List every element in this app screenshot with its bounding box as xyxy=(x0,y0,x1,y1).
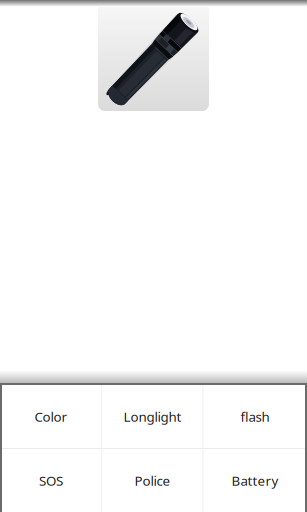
staticText: Longlight xyxy=(123,408,181,425)
button[interactable]: Police xyxy=(102,449,202,512)
button[interactable]: SOS xyxy=(0,449,101,512)
button[interactable]: Longlight xyxy=(102,385,202,448)
button[interactable]: flash xyxy=(203,385,306,448)
staticText: flash xyxy=(240,408,269,425)
staticText: Color xyxy=(34,408,67,425)
button[interactable]: Battery xyxy=(203,449,306,512)
staticText: Police xyxy=(134,472,170,489)
staticText: Battery xyxy=(231,472,278,489)
button[interactable]: Color xyxy=(0,385,101,448)
staticText: SOS xyxy=(39,472,63,489)
